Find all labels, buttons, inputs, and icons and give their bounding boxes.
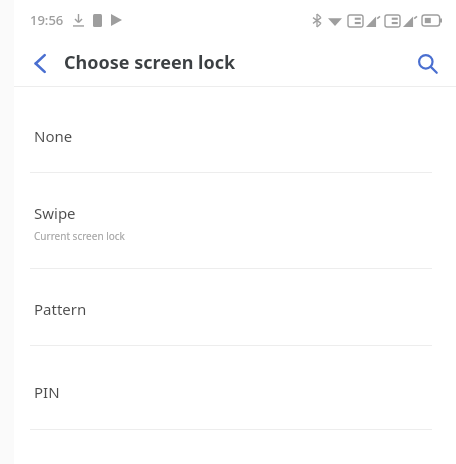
button[interactable]: Swipe xyxy=(0,173,456,268)
button[interactable]: PIN xyxy=(0,346,456,429)
staticText: Pattern xyxy=(34,299,87,319)
button[interactable]: None xyxy=(0,87,456,172)
staticText: PIN xyxy=(34,382,60,402)
staticText: Current screen lock xyxy=(34,229,125,243)
staticText: 19:56 xyxy=(30,11,64,29)
button[interactable]: Search xyxy=(410,46,444,80)
button[interactable]: Back xyxy=(24,47,56,79)
button[interactable]: Pattern xyxy=(0,269,456,345)
staticText: Swipe xyxy=(34,203,76,223)
staticText: Choose screen lock xyxy=(64,50,236,75)
staticText: None xyxy=(34,126,73,146)
